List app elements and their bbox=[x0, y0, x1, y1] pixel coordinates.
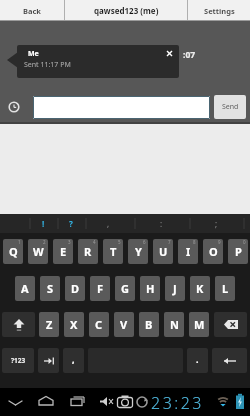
staticText: ?123 bbox=[11, 356, 26, 365]
button[interactable] bbox=[38, 348, 59, 373]
staticText: X bbox=[70, 317, 78, 332]
button[interactable]: T bbox=[103, 239, 123, 264]
staticText: C bbox=[95, 317, 103, 332]
staticText: A bbox=[21, 281, 29, 296]
button[interactable]: W bbox=[28, 239, 48, 264]
staticText: I bbox=[186, 244, 191, 259]
button[interactable] bbox=[6, 388, 28, 416]
button[interactable] bbox=[33, 96, 210, 119]
staticText: N bbox=[170, 317, 179, 332]
staticText: D bbox=[71, 281, 80, 296]
staticText: 23:23 bbox=[151, 392, 204, 414]
staticText: 1 bbox=[18, 239, 21, 245]
staticText: . bbox=[196, 353, 199, 365]
button[interactable]: Y bbox=[128, 239, 148, 264]
button[interactable]: Send bbox=[214, 95, 246, 119]
button[interactable]: R bbox=[78, 239, 98, 264]
staticText: ? bbox=[69, 218, 73, 229]
staticText: ! bbox=[42, 218, 45, 229]
staticText: Send bbox=[222, 102, 239, 112]
button[interactable] bbox=[36, 388, 58, 416]
button[interactable]: V bbox=[114, 312, 134, 337]
button[interactable]: B bbox=[139, 312, 159, 337]
staticText: E bbox=[60, 244, 67, 259]
button[interactable]: Q bbox=[3, 239, 23, 264]
staticText: T bbox=[110, 244, 117, 259]
button[interactable]: L bbox=[215, 276, 235, 301]
staticText: Q bbox=[9, 244, 18, 259]
staticText: R bbox=[84, 244, 92, 259]
button[interactable]: F bbox=[90, 276, 110, 301]
button[interactable]: N bbox=[164, 312, 184, 337]
staticText: V bbox=[120, 317, 128, 332]
staticText: 6 bbox=[143, 239, 146, 245]
button[interactable]: , bbox=[63, 348, 84, 373]
staticText: L bbox=[222, 281, 229, 296]
staticText: Sent 11:17 PM bbox=[24, 60, 71, 70]
staticText: , bbox=[72, 353, 75, 365]
button[interactable] bbox=[68, 388, 90, 416]
button[interactable]: P bbox=[228, 239, 248, 264]
button[interactable]: Settings bbox=[188, 0, 250, 21]
staticText: K bbox=[196, 281, 204, 296]
button[interactable]: Back bbox=[0, 0, 64, 21]
button[interactable]: . bbox=[187, 348, 208, 373]
staticText: 8 bbox=[193, 239, 196, 245]
button[interactable] bbox=[212, 348, 247, 373]
button[interactable]: S bbox=[40, 276, 60, 301]
staticText: P bbox=[235, 244, 242, 259]
staticText: W bbox=[33, 244, 44, 259]
staticText: 7 bbox=[168, 239, 171, 245]
staticText: , bbox=[107, 218, 110, 229]
button[interactable]: H bbox=[140, 276, 160, 301]
button[interactable]: Me bbox=[17, 45, 179, 78]
staticText: 0 bbox=[243, 239, 246, 245]
staticText: :07 bbox=[183, 49, 196, 61]
button[interactable]: K bbox=[190, 276, 210, 301]
staticText: F bbox=[97, 281, 104, 296]
staticText: 5 bbox=[118, 239, 121, 245]
button[interactable]: M bbox=[189, 312, 209, 337]
staticText: Y bbox=[135, 244, 142, 259]
staticText: Back bbox=[23, 6, 41, 16]
staticText: : bbox=[160, 218, 163, 229]
button[interactable]: I bbox=[178, 239, 198, 264]
button[interactable]: J bbox=[165, 276, 185, 301]
staticText: Settings bbox=[204, 6, 235, 16]
staticText: H bbox=[146, 281, 155, 296]
button[interactable] bbox=[2, 312, 35, 337]
button[interactable]: U bbox=[153, 239, 173, 264]
button[interactable]: Z bbox=[39, 312, 59, 337]
button[interactable]: ?123 bbox=[2, 348, 34, 373]
staticText: qawsed123 (me) bbox=[94, 5, 159, 16]
button[interactable]: C bbox=[89, 312, 109, 337]
staticText: S bbox=[47, 281, 54, 296]
staticText: Me bbox=[28, 49, 39, 59]
button[interactable]: G bbox=[115, 276, 135, 301]
staticText: 2 bbox=[43, 239, 46, 245]
button[interactable]: E bbox=[53, 239, 73, 264]
staticText: ; bbox=[215, 218, 218, 229]
staticText: O bbox=[209, 244, 218, 259]
button[interactable]: A bbox=[15, 276, 35, 301]
staticText: 3 bbox=[68, 239, 71, 245]
button[interactable]: X bbox=[64, 312, 84, 337]
staticText: G bbox=[121, 281, 129, 296]
staticText: J bbox=[173, 281, 177, 296]
button[interactable]: D bbox=[65, 276, 85, 301]
button[interactable]: O bbox=[203, 239, 223, 264]
staticText: 4 bbox=[93, 239, 96, 245]
staticText: M bbox=[194, 317, 205, 332]
button[interactable] bbox=[214, 312, 247, 337]
staticText: Z bbox=[46, 317, 53, 332]
staticText: 9 bbox=[218, 239, 221, 245]
staticText: U bbox=[159, 244, 168, 259]
staticText: B bbox=[145, 317, 153, 332]
